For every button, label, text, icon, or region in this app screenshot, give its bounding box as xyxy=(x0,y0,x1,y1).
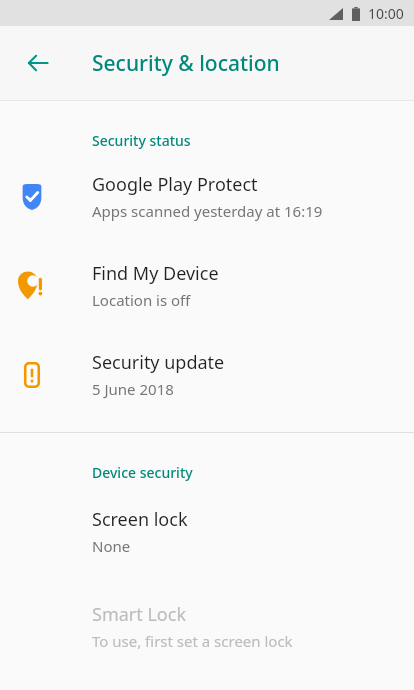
staticText: Google Play Protect xyxy=(92,172,258,197)
button[interactable]: Screen lock xyxy=(0,507,414,556)
button[interactable]: Find My Device xyxy=(0,261,414,310)
staticText: Security update xyxy=(92,350,225,375)
button[interactable]: Smart Lock xyxy=(0,602,414,651)
staticText: To use, first set a screen lock xyxy=(92,631,293,651)
staticText: Apps scanned yesterday at 16:19 xyxy=(92,201,323,221)
staticText: None xyxy=(92,536,131,556)
button[interactable]: Back xyxy=(14,39,62,87)
staticText: Find My Device xyxy=(92,261,219,286)
staticText: Location is off xyxy=(92,290,191,310)
staticText: 5 June 2018 xyxy=(92,379,174,399)
staticText: 10:00 xyxy=(368,4,404,23)
button[interactable]: Security update xyxy=(0,350,414,399)
staticText: Smart Lock xyxy=(92,602,186,627)
staticText: Screen lock xyxy=(92,507,188,532)
staticText: Device security xyxy=(92,463,193,482)
staticText: Security & location xyxy=(92,49,280,78)
button[interactable]: Google Play Protect xyxy=(0,172,414,221)
staticText: Security status xyxy=(92,131,191,150)
